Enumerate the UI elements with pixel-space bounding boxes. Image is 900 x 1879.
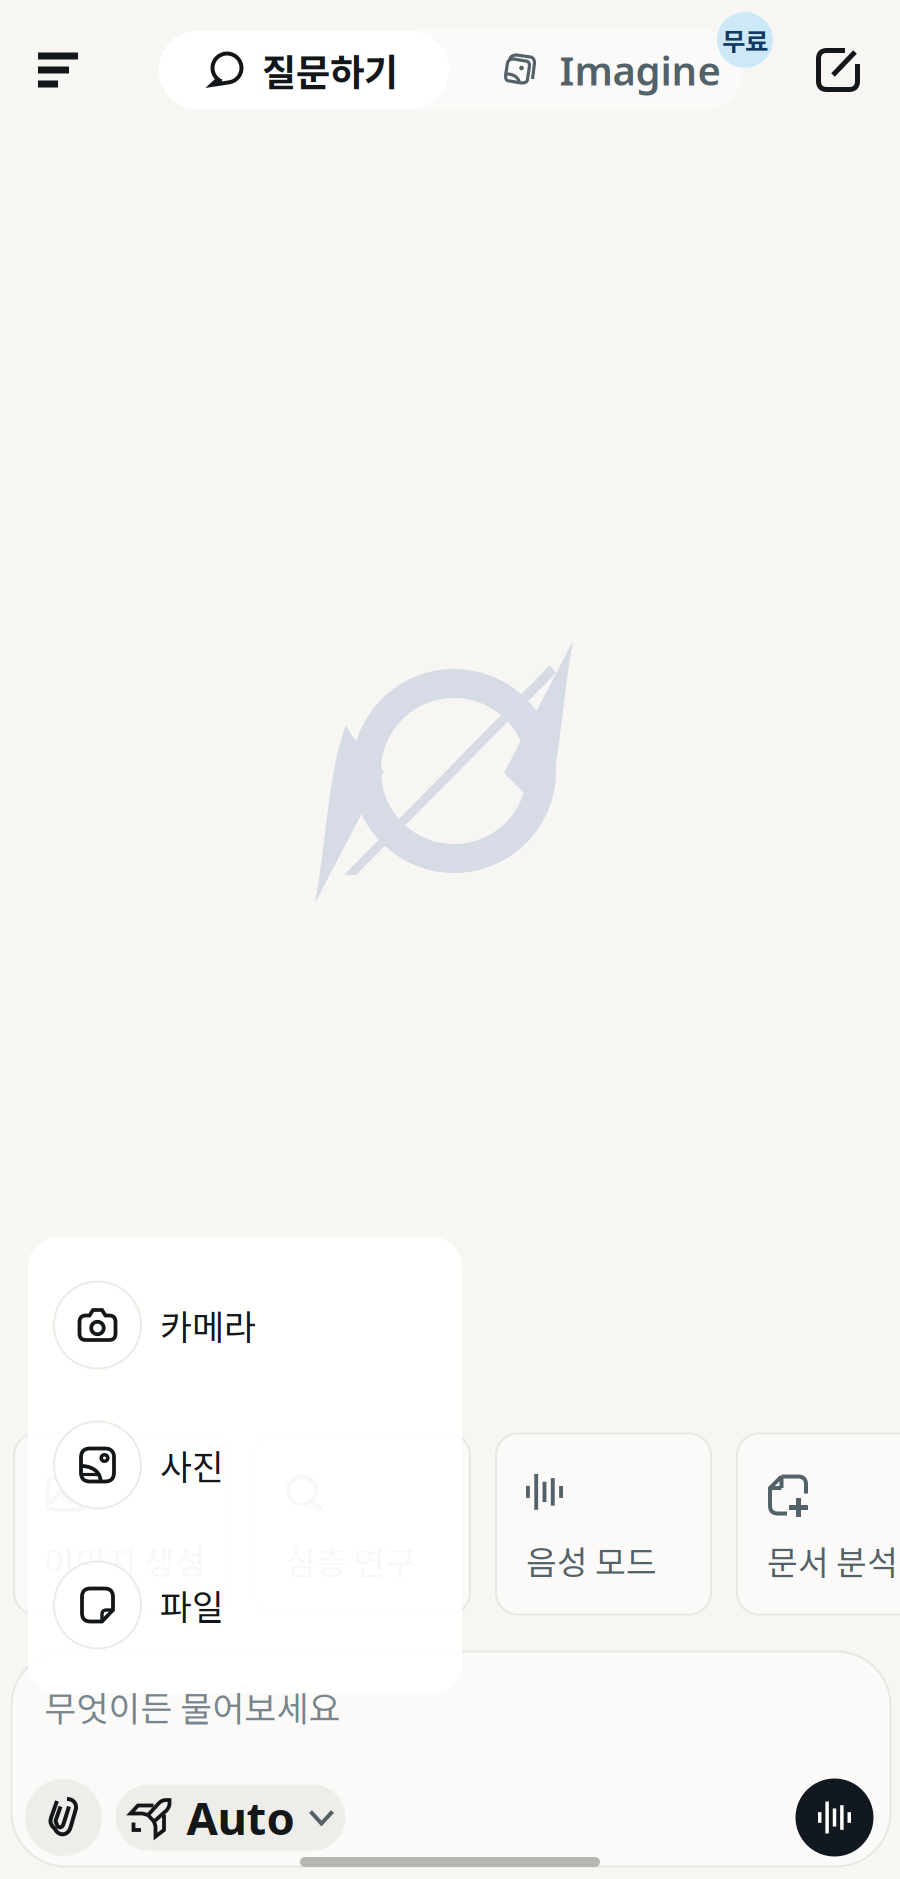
button[interactable]: Imagine — [497, 30, 792, 110]
button[interactable]: New chat — [800, 32, 876, 108]
button[interactable]: Voice mode — [795, 1778, 873, 1856]
button[interactable]: 카메라 — [28, 1265, 462, 1385]
button[interactable]: Attach — [25, 1779, 102, 1856]
button[interactable]: 이미지 생성 — [14, 1433, 229, 1614]
staticText: 무엇이든 물어보세요 — [44, 1681, 340, 1732]
staticText: 질문하기 — [262, 43, 398, 97]
staticText: 사진 — [160, 1440, 224, 1490]
button[interactable]: 음성 모드 — [496, 1433, 711, 1614]
staticText: 이미지 생성 — [44, 1536, 206, 1584]
button[interactable]: Menu — [21, 33, 95, 107]
button[interactable]: 질문하기 — [159, 31, 449, 109]
staticText: 문서 분석 — [767, 1536, 898, 1584]
button[interactable]: Auto — [115, 1784, 345, 1850]
staticText: 카메라 — [160, 1300, 256, 1350]
button[interactable]: 파일 — [28, 1545, 462, 1665]
staticText: 음성 모드 — [526, 1536, 657, 1584]
button[interactable]: 사진 — [28, 1405, 462, 1525]
staticText: Imagine — [559, 43, 720, 96]
button[interactable]: 문서 분석 — [737, 1433, 900, 1614]
staticText: 파일 — [160, 1580, 224, 1630]
staticText: Auto — [186, 1787, 294, 1848]
staticText: 무료 — [722, 22, 768, 58]
